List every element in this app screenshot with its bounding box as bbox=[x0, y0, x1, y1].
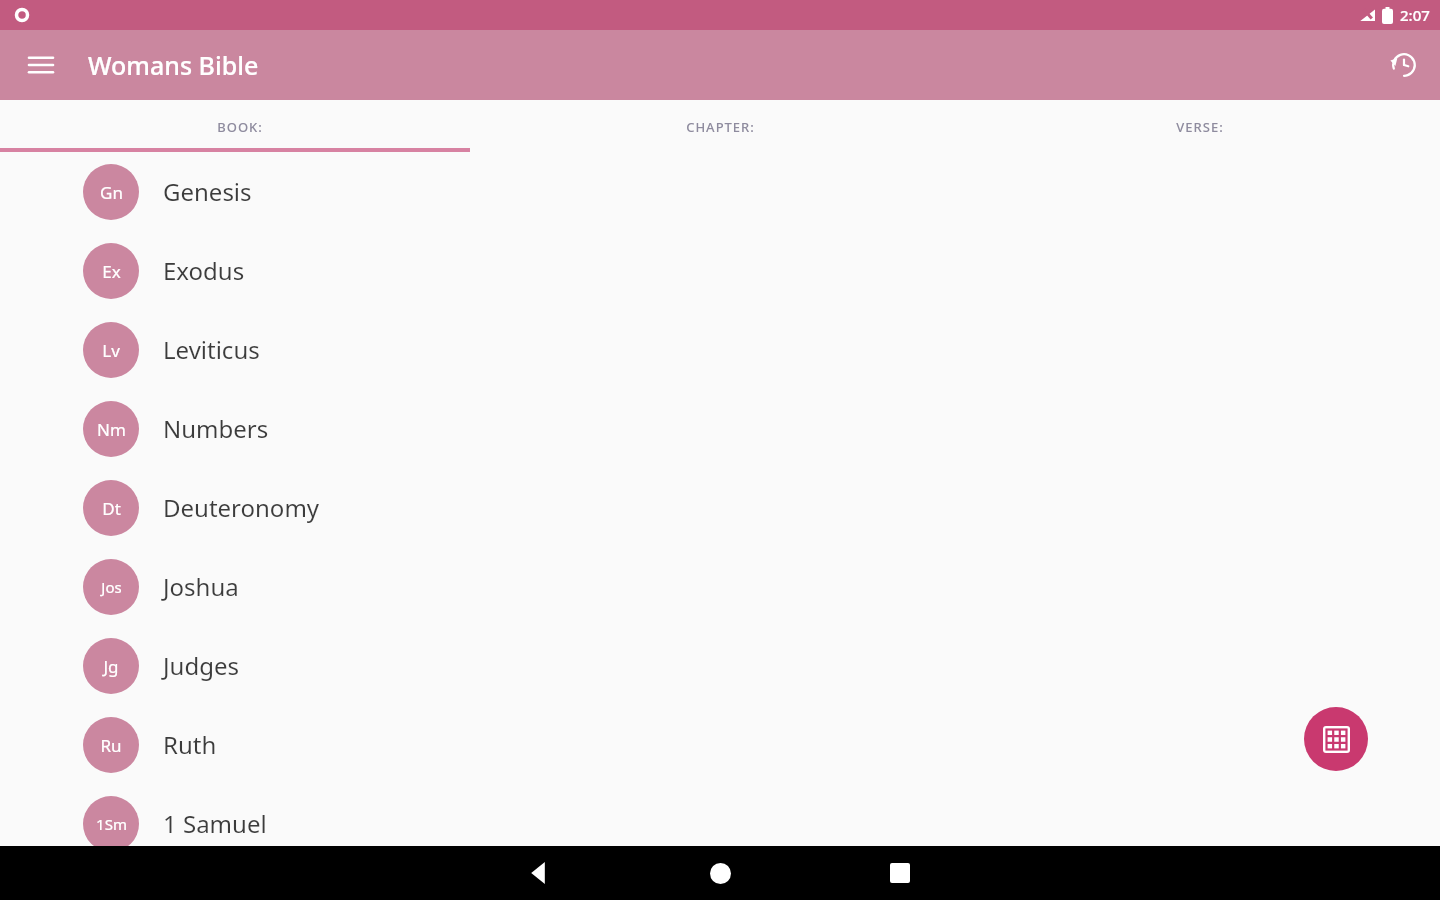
button[interactable]: CHAPTER: bbox=[480, 100, 960, 152]
button[interactable]: Home bbox=[630, 846, 810, 900]
staticText: Ex bbox=[102, 260, 121, 283]
staticText: 2:07 bbox=[1400, 5, 1430, 25]
button[interactable]: Ru bbox=[0, 705, 1440, 784]
staticText: VERSE: bbox=[1176, 118, 1224, 136]
button[interactable]: VERSE: bbox=[960, 100, 1440, 152]
button[interactable]: Jos bbox=[0, 547, 1440, 626]
staticText: Jg bbox=[103, 655, 119, 678]
button[interactable]: History bbox=[1381, 42, 1427, 88]
staticText: Ruth bbox=[163, 728, 217, 761]
staticText: Joshua bbox=[163, 570, 239, 603]
button[interactable]: Dt bbox=[0, 468, 1440, 547]
button[interactable]: BOOK: bbox=[0, 100, 480, 152]
staticText: Lv bbox=[102, 339, 120, 362]
button[interactable]: Open navigation menu bbox=[17, 41, 65, 89]
button[interactable]: Ex bbox=[0, 231, 1440, 310]
staticText: 1 Samuel bbox=[163, 807, 267, 840]
button[interactable]: 2Sm bbox=[0, 863, 1440, 900]
staticText: CHAPTER: bbox=[686, 118, 755, 136]
staticText: Jos bbox=[101, 577, 122, 597]
staticText: Deuteronomy bbox=[163, 491, 320, 524]
button[interactable]: Open grid view bbox=[1304, 707, 1368, 771]
button[interactable]: Lv bbox=[0, 310, 1440, 389]
button[interactable]: Gn bbox=[0, 152, 1440, 231]
staticText: Gn bbox=[100, 181, 123, 204]
button[interactable]: Nm bbox=[0, 389, 1440, 468]
button[interactable]: Back bbox=[450, 846, 630, 900]
button[interactable]: Recent apps bbox=[810, 846, 990, 900]
staticText: Genesis bbox=[163, 175, 252, 208]
staticText: Womans Bible bbox=[88, 48, 259, 82]
staticText: Exodus bbox=[163, 254, 245, 287]
button[interactable]: 1Sm bbox=[0, 784, 1440, 863]
staticText: Dt bbox=[102, 497, 121, 520]
staticText: 1Sm bbox=[96, 814, 127, 834]
button[interactable]: Jg bbox=[0, 626, 1440, 705]
staticText: BOOK: bbox=[217, 118, 263, 136]
staticText: Nm bbox=[97, 418, 126, 441]
staticText: Leviticus bbox=[163, 333, 260, 366]
staticText: Numbers bbox=[163, 412, 269, 445]
staticText: Ru bbox=[100, 734, 122, 757]
staticText: Judges bbox=[163, 649, 239, 682]
